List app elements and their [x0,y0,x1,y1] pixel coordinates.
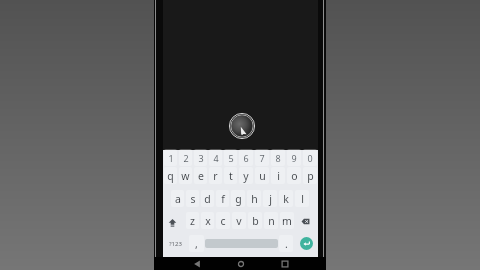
staticText: k [283,192,289,206]
button[interactable]: 6 [238,147,254,168]
button[interactable]: Back [188,257,206,270]
staticText: b [252,214,259,228]
staticText: d [204,192,211,206]
staticText: c [220,214,226,228]
button[interactable]: h [246,188,262,209]
staticText: p [307,169,314,183]
staticText: 4 [213,152,219,164]
staticText: y [243,169,249,183]
button[interactable]: z [185,210,200,231]
button[interactable]: Backspace [295,210,318,231]
staticText: i [277,169,280,183]
button[interactable]: f [215,188,230,209]
button[interactable]: 9 [286,147,302,168]
button[interactable]: ?123 [163,233,188,254]
staticText: z [190,214,195,228]
staticText: s [190,192,196,206]
button[interactable]: a [170,188,185,209]
button[interactable]: d [200,188,215,209]
staticText: 2 [183,152,189,164]
staticText: ?123 [169,240,182,248]
staticText: , [195,237,198,251]
staticText: v [236,214,242,228]
button[interactable]: q [163,165,178,186]
staticText: j [269,192,272,206]
button[interactable]: l [294,188,310,209]
staticText: t [229,169,233,183]
staticText: o [291,169,298,183]
staticText: w [181,169,190,183]
button[interactable]: m [279,210,295,231]
button[interactable]: 3 [193,147,208,168]
button[interactable]: k [278,188,294,209]
button[interactable]: t [223,165,238,186]
button[interactable]: x [200,210,215,231]
button[interactable]: 2 [178,147,193,168]
staticText: x [205,214,211,228]
staticText: h [251,192,258,206]
button[interactable]: Shift [163,210,185,231]
button[interactable]: , [188,233,205,254]
staticText: 9 [291,152,297,164]
button[interactable]: v [231,210,247,231]
staticText: l [301,192,304,206]
staticText: n [268,214,275,228]
button[interactable]: Recents [276,257,294,270]
staticText: g [235,192,242,206]
staticText: 5 [228,152,234,164]
button[interactable]: u [254,165,270,186]
staticText: q [167,169,174,183]
button[interactable]: n [263,210,279,231]
button[interactable]: . [278,233,294,254]
button[interactable]: 5 [223,147,238,168]
button[interactable]: s [185,188,200,209]
button[interactable]: 0 [302,147,318,168]
staticText: 0 [307,152,313,164]
staticText: 1 [168,152,174,164]
staticText: m [282,214,292,228]
button[interactable]: 4 [208,147,223,168]
button[interactable]: 1 [163,147,178,168]
staticText: r [213,169,218,183]
button[interactable]: w [178,165,193,186]
button[interactable]: e [193,165,208,186]
staticText: a [175,192,181,206]
button[interactable]: 7 [254,147,270,168]
button[interactable]: i [270,165,286,186]
staticText: e [198,169,204,183]
button[interactable]: y [238,165,254,186]
button[interactable]: g [230,188,246,209]
button[interactable]: j [262,188,278,209]
button[interactable]: o [286,165,302,186]
button[interactable]: r [208,165,223,186]
button[interactable]: 8 [270,147,286,168]
staticText: 3 [198,152,204,164]
button[interactable]: c [215,210,231,231]
button[interactable]: p [302,165,318,186]
staticText: 8 [275,152,281,164]
button[interactable]: Enter [300,237,313,250]
staticText: 6 [243,152,249,164]
staticText: u [259,169,266,183]
button[interactable]: Home [232,257,250,270]
staticText: 7 [259,152,265,164]
staticText: . [285,237,288,251]
button[interactable]: b [247,210,263,231]
staticText: f [221,192,225,206]
